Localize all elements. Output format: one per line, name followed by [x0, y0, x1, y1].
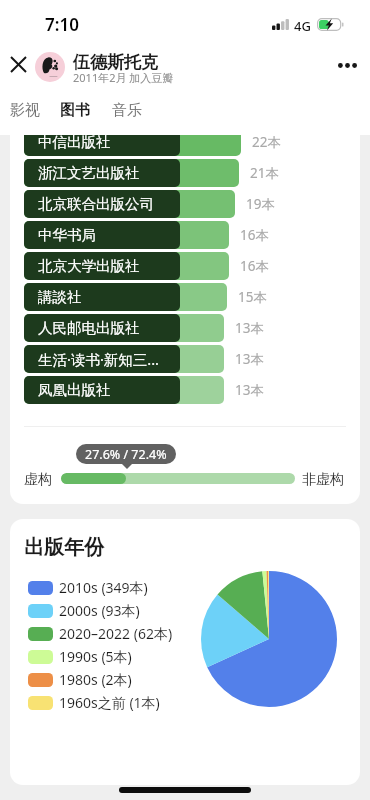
staticText: 2000s (93本): [59, 601, 140, 620]
staticText: 27.6% / 72.4%: [85, 446, 167, 463]
staticText: 图书: [60, 101, 90, 120]
staticText: 講談社: [38, 288, 82, 306]
button[interactable]: 音乐: [105, 96, 149, 124]
staticText: 凤凰出版社: [38, 381, 111, 399]
staticText: 北京大学出版社: [38, 257, 140, 275]
staticText: 音乐: [112, 101, 142, 120]
staticText: 13本: [235, 319, 264, 337]
button[interactable]: 影视: [3, 96, 47, 124]
staticText: 出版年份: [24, 535, 104, 560]
staticText: 2010s (349本): [59, 578, 148, 597]
staticText: 16本: [240, 257, 269, 275]
staticText: 中信出版社: [38, 135, 111, 151]
staticText: 19本: [246, 195, 275, 213]
button[interactable]: Close: [2, 48, 34, 80]
staticText: 生活·读书·新知三...: [38, 349, 159, 369]
staticText: 2011年2月 加入豆瓣: [73, 70, 174, 85]
staticText: 15本: [238, 288, 267, 306]
staticText: 16本: [240, 226, 269, 244]
staticText: 人民邮电出版社: [38, 319, 140, 337]
staticText: 伍德斯托克: [73, 52, 158, 73]
staticText: 2020–2022 (62本): [59, 624, 173, 643]
staticText: 22本: [252, 135, 281, 151]
staticText: 1990s (5本): [59, 647, 132, 666]
button[interactable]: More options: [330, 48, 364, 82]
staticText: 虚构: [24, 471, 52, 489]
staticText: 影视: [10, 101, 40, 120]
staticText: 1980s (2本): [59, 670, 132, 689]
staticText: 13本: [235, 350, 264, 368]
staticText: 中华书局: [38, 226, 96, 244]
staticText: 北京联合出版公司: [38, 195, 154, 213]
staticText: 7:10: [45, 13, 79, 36]
staticText: 4G: [294, 17, 311, 35]
staticText: 非虚构: [302, 471, 344, 489]
staticText: 21本: [250, 164, 279, 182]
staticText: 1960s之前 (1本): [59, 693, 160, 712]
button[interactable]: 图书: [53, 96, 97, 124]
staticText: 浙江文艺出版社: [38, 164, 140, 182]
staticText: 13本: [235, 381, 264, 399]
